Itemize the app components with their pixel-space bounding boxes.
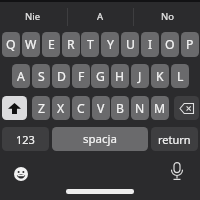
button[interactable]: F bbox=[72, 64, 90, 88]
button[interactable]: A bbox=[67, 3, 133, 30]
button[interactable] bbox=[174, 96, 199, 120]
button[interactable]: K bbox=[151, 64, 169, 88]
staticText: Y bbox=[107, 36, 114, 53]
button[interactable]: V bbox=[92, 96, 110, 120]
staticText: Z bbox=[38, 100, 45, 117]
button[interactable]: W bbox=[22, 32, 40, 57]
button[interactable]: Q bbox=[2, 32, 20, 57]
staticText: E bbox=[48, 36, 55, 53]
staticText: K bbox=[156, 68, 164, 85]
staticText: B bbox=[116, 100, 124, 117]
button[interactable]: spacja bbox=[52, 127, 148, 151]
staticText: I bbox=[148, 36, 153, 53]
staticText: return bbox=[158, 132, 191, 147]
button[interactable]: Y bbox=[101, 32, 119, 57]
button[interactable]: N bbox=[131, 96, 149, 120]
staticText: Q bbox=[6, 36, 16, 53]
staticText: 123 bbox=[16, 132, 35, 147]
button[interactable]: M bbox=[151, 96, 169, 120]
staticText: O bbox=[165, 36, 175, 53]
staticText: A bbox=[97, 10, 104, 23]
staticText: N bbox=[135, 100, 145, 117]
button[interactable]: Nie bbox=[0, 3, 66, 30]
button[interactable]: B bbox=[111, 96, 129, 120]
staticText: X bbox=[57, 100, 65, 117]
button[interactable]: U bbox=[121, 32, 139, 57]
button[interactable]: T bbox=[81, 32, 99, 57]
button[interactable] bbox=[7, 160, 34, 187]
staticText: H bbox=[115, 68, 125, 85]
button[interactable]: O bbox=[161, 32, 179, 57]
button[interactable]: P bbox=[181, 32, 199, 57]
button[interactable]: H bbox=[111, 64, 129, 88]
button[interactable] bbox=[2, 96, 27, 120]
button[interactable]: J bbox=[131, 64, 149, 88]
button[interactable] bbox=[165, 158, 189, 184]
staticText: Nie bbox=[25, 10, 41, 23]
staticText: V bbox=[97, 100, 105, 117]
staticText: G bbox=[96, 68, 105, 85]
button[interactable]: S bbox=[32, 64, 50, 88]
staticText: D bbox=[57, 68, 66, 85]
staticText: W bbox=[25, 36, 37, 53]
staticText: M bbox=[154, 100, 166, 117]
staticText: A bbox=[17, 68, 25, 85]
staticText: U bbox=[126, 36, 135, 53]
staticText: C bbox=[77, 100, 85, 117]
staticText: L bbox=[177, 68, 184, 85]
button[interactable]: I bbox=[141, 32, 159, 57]
button[interactable]: G bbox=[91, 64, 109, 88]
staticText: R bbox=[67, 36, 75, 53]
button[interactable]: 123 bbox=[2, 127, 49, 151]
staticText: F bbox=[78, 68, 85, 85]
button[interactable]: Z bbox=[32, 96, 50, 120]
button[interactable]: R bbox=[62, 32, 80, 57]
button[interactable]: return bbox=[151, 127, 198, 151]
button[interactable]: E bbox=[42, 32, 60, 57]
button[interactable]: C bbox=[72, 96, 90, 120]
button[interactable]: A bbox=[12, 64, 30, 88]
staticText: P bbox=[186, 36, 194, 53]
button[interactable]: X bbox=[52, 96, 70, 120]
staticText: No bbox=[161, 10, 174, 23]
staticText: S bbox=[38, 68, 45, 85]
staticText: T bbox=[87, 36, 94, 53]
staticText: J bbox=[138, 68, 142, 85]
staticText: spacja bbox=[83, 131, 117, 147]
button[interactable]: D bbox=[52, 64, 70, 88]
button[interactable]: L bbox=[171, 64, 189, 88]
button[interactable]: No bbox=[134, 3, 200, 30]
